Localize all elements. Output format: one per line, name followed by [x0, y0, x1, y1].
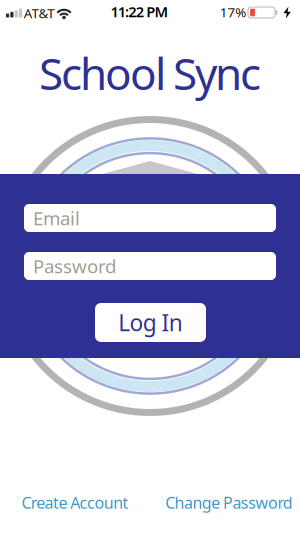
secureTextField[interactable]: Password	[33, 254, 276, 278]
staticText: School Sync	[39, 44, 261, 102]
textField[interactable]: Email	[33, 206, 276, 230]
button[interactable]: Log In	[95, 303, 206, 342]
button[interactable]: Create Account	[21, 492, 129, 513]
staticText: 11:22 PM	[110, 2, 169, 21]
staticText: Password	[33, 254, 116, 278]
staticText: 17%	[220, 3, 246, 21]
button[interactable]: Change Password	[165, 492, 293, 513]
staticText: Log In	[118, 307, 183, 337]
staticText: Change Password	[165, 492, 293, 513]
staticText: Create Account	[21, 492, 129, 513]
staticText: AT&T	[24, 4, 54, 22]
staticText: Email	[33, 206, 80, 230]
